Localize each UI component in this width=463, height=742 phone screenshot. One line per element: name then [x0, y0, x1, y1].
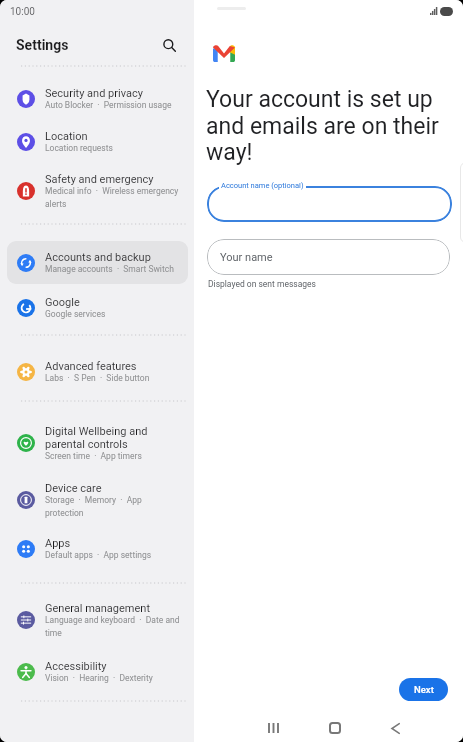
button[interactable]: Accessibility	[7, 657, 188, 686]
staticText: Your name	[220, 251, 273, 264]
staticText: Manage accounts · Smart Switch	[45, 264, 174, 274]
button[interactable]: Apps	[7, 534, 188, 563]
staticText: Google services	[45, 309, 106, 319]
button[interactable]: Accounts and backup	[7, 241, 188, 284]
staticText: Advanced features	[45, 360, 137, 373]
staticText: Account name (optional)	[221, 181, 304, 190]
staticText: Location	[45, 130, 88, 143]
staticText: Labs · S Pen · Side button	[45, 373, 150, 383]
staticText: Displayed on sent messages	[208, 279, 316, 289]
button[interactable]: General management	[7, 599, 188, 640]
staticText: Security and privacy	[45, 87, 143, 100]
button[interactable]: Back	[381, 714, 409, 742]
staticText: Safety and emergency	[45, 173, 154, 186]
staticText: Screen time · App timers	[45, 451, 142, 461]
staticText: Location requests	[45, 143, 113, 153]
staticText: Auto Blocker · Permission usage	[45, 100, 172, 110]
staticText: Accessibility	[45, 660, 107, 673]
button[interactable]	[207, 186, 452, 222]
staticText: Next	[414, 684, 434, 695]
staticText: General management	[45, 602, 150, 615]
staticText: Storage · Memory · App protection	[45, 495, 181, 518]
button[interactable]: Location	[7, 127, 188, 156]
staticText: Language and keyboard · Date and time	[45, 615, 181, 638]
staticText: Accounts and backup	[45, 251, 151, 264]
staticText: Default apps · App settings	[45, 550, 152, 560]
staticText: Apps	[45, 537, 71, 550]
staticText: 10:00	[10, 6, 35, 18]
button[interactable]: Digital Wellbeing and parental controls	[7, 422, 188, 463]
button[interactable]: Safety and emergency	[7, 170, 188, 211]
staticText: Device care	[45, 482, 102, 495]
staticText: Settings	[16, 37, 69, 53]
button[interactable]: Security and privacy	[7, 84, 188, 113]
button[interactable]: Advanced features	[7, 357, 188, 386]
staticText: Vision · Hearing · Dexterity	[45, 673, 153, 683]
staticText: Medical info · Wireless emergency alerts	[45, 186, 181, 209]
button[interactable]: Your name	[207, 239, 450, 275]
button[interactable]: Google	[7, 293, 188, 322]
button[interactable]: Search	[158, 34, 180, 56]
staticText: Google	[45, 296, 80, 309]
button[interactable]: Recents	[259, 714, 287, 742]
button[interactable]: Device care	[7, 479, 188, 520]
staticText: Digital Wellbeing and parental controls	[45, 425, 181, 451]
button[interactable]: Next	[399, 678, 448, 701]
staticText: Your account is set up and emails are on…	[206, 86, 439, 166]
button[interactable]: Home	[321, 714, 349, 742]
